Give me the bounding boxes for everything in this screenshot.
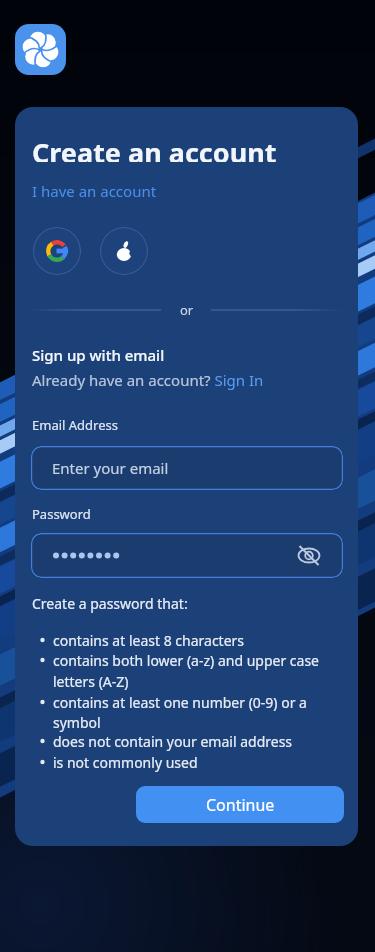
button[interactable] [100, 227, 148, 275]
staticText: contains at least 8 characters [53, 631, 245, 650]
staticText: Password [32, 505, 91, 523]
staticText: Sign up with email [32, 345, 165, 365]
staticText: is not commonly used [53, 753, 198, 772]
staticText: Enter your email [52, 458, 169, 478]
staticText: Email Address [32, 416, 118, 434]
staticText: Already have an account? Sign In [32, 370, 264, 390]
staticText: Create an account [32, 134, 277, 162]
staticText: I have an account [32, 181, 157, 201]
button[interactable]: Already have an account? Sign In [32, 366, 264, 394]
button[interactable] [33, 227, 81, 275]
button[interactable] [31, 533, 343, 578]
staticText: symbol [53, 713, 101, 732]
staticText: letters (A-Z) [53, 672, 129, 691]
button[interactable]: Enter your email [31, 446, 343, 490]
staticText: Create a password that: [32, 594, 188, 613]
button[interactable]: I have an account [32, 177, 157, 205]
staticText: contains at least one number (0-9) or a [53, 693, 307, 712]
staticText: does not contain your email address [53, 732, 293, 751]
staticText: Continue [206, 794, 275, 816]
button[interactable] [297, 533, 343, 578]
staticText: or [180, 301, 194, 319]
button[interactable] [15, 24, 66, 75]
staticText: contains both lower (a-z) and upper case [53, 651, 320, 670]
button[interactable]: Continue [136, 786, 344, 823]
